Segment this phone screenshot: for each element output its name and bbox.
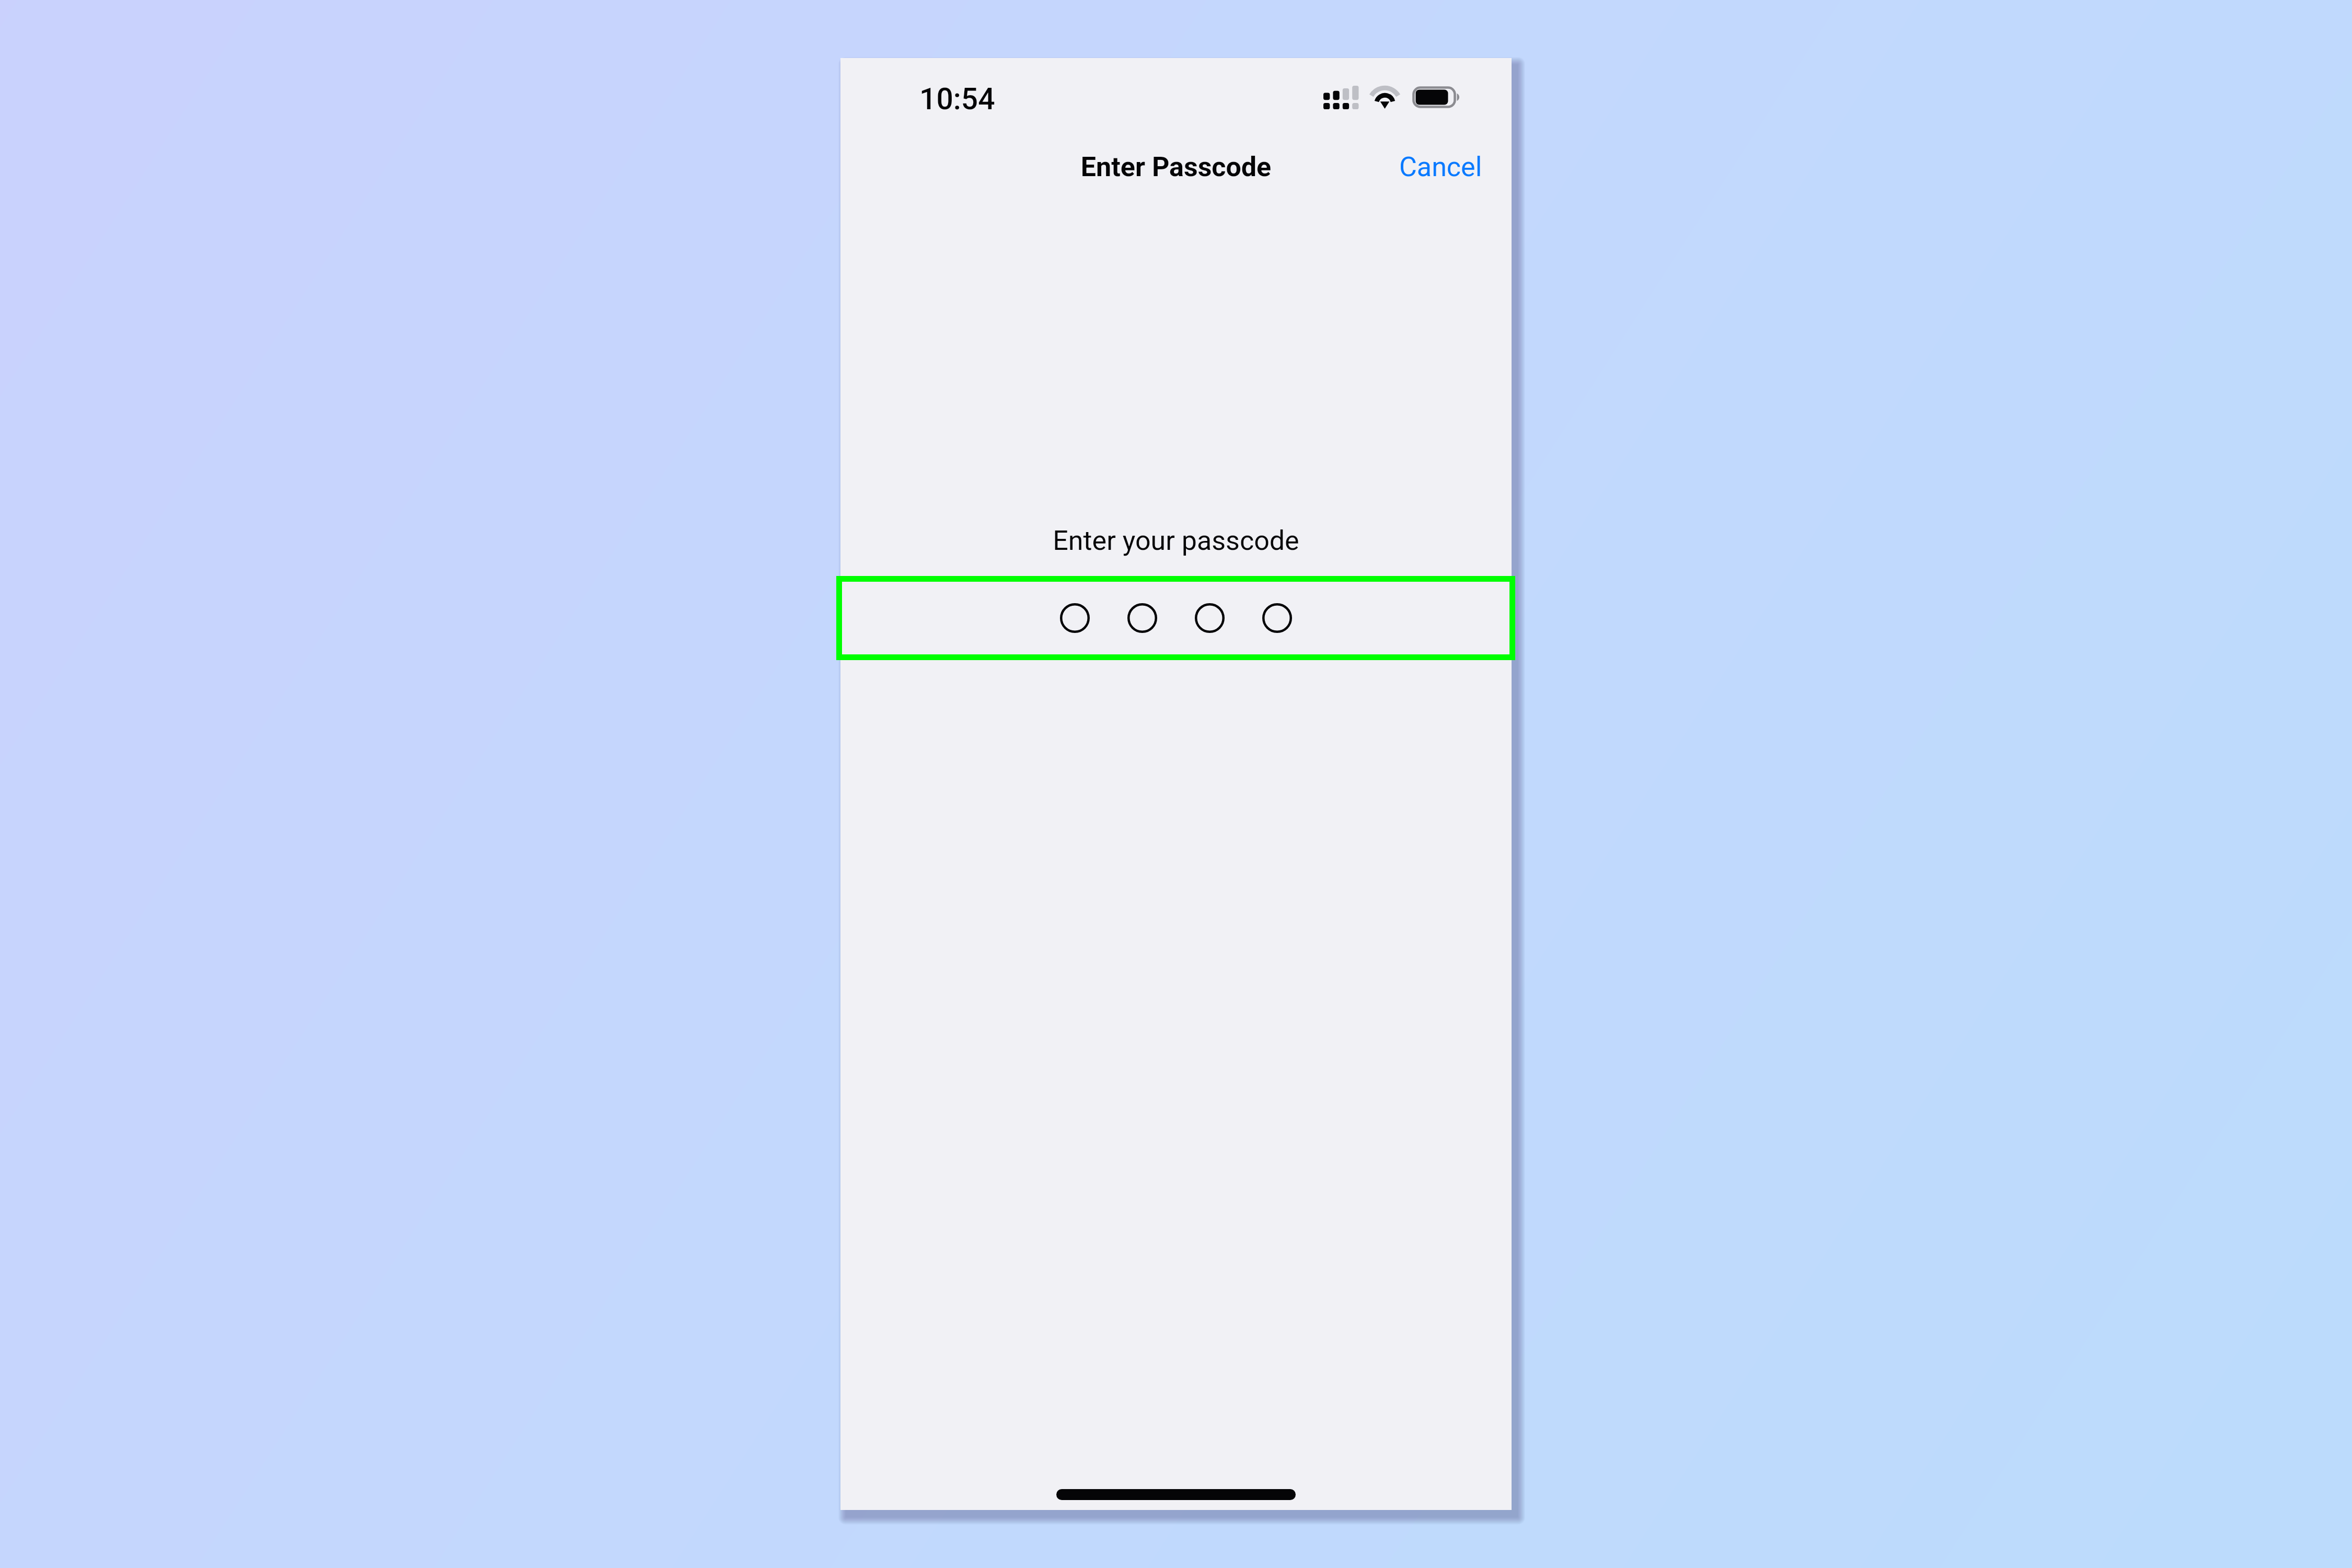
staticText: Enter your passcode [840,525,1512,557]
other: Cellular signal strength [1323,86,1359,109]
button[interactable]: Cancel [1381,141,1500,193]
staticText: Cancel [1399,151,1482,183]
staticText: 10:54 [919,82,995,117]
other: Wi-Fi connected [1370,86,1400,108]
other: Battery level [1412,86,1460,108]
staticText: Enter Passcode [840,151,1512,183]
button[interactable]: Passcode entry field [840,576,1512,660]
